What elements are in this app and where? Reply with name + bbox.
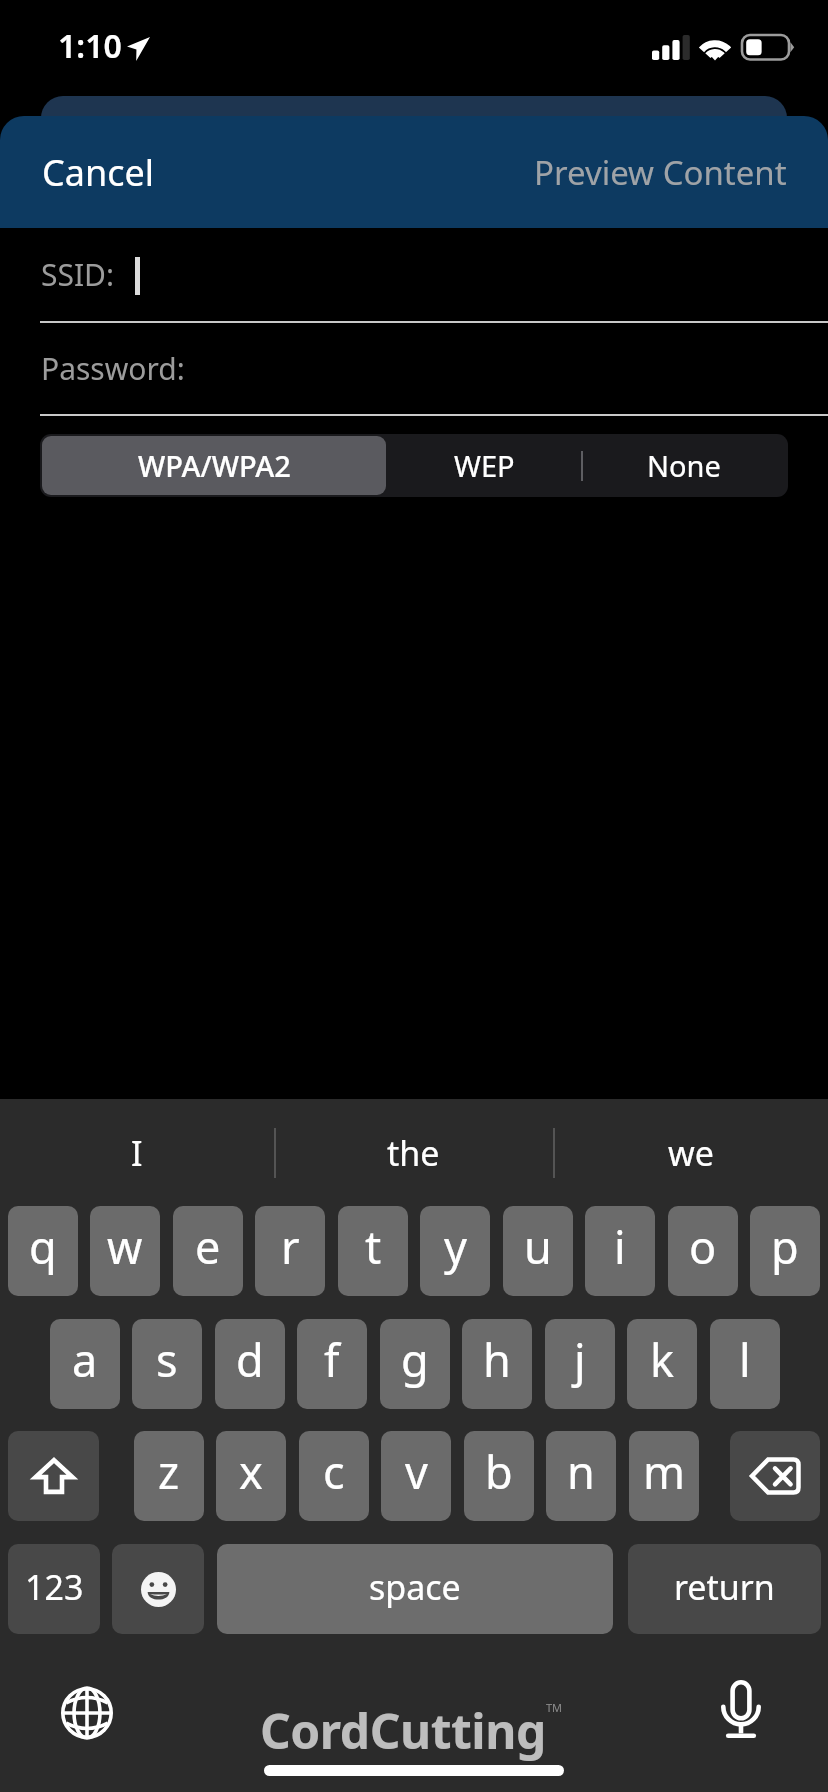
button[interactable]: u <box>503 1206 573 1296</box>
button[interactable]: Preview Content <box>534 150 803 195</box>
staticText: e <box>195 1216 221 1277</box>
button[interactable]: Change keyboard language <box>61 1687 113 1739</box>
button[interactable]: p <box>750 1206 820 1296</box>
staticText: I <box>131 1130 143 1176</box>
staticText: space <box>369 1564 461 1610</box>
staticText: j <box>574 1329 586 1390</box>
button[interactable]: SSID: <box>0 228 828 321</box>
staticText: r <box>281 1216 300 1277</box>
button[interactable]: return <box>628 1544 821 1634</box>
staticText: f <box>324 1329 340 1390</box>
button[interactable]: Password: <box>0 323 828 414</box>
button[interactable]: t <box>338 1206 408 1296</box>
staticText: d <box>236 1329 264 1390</box>
button[interactable]: k <box>627 1319 697 1409</box>
staticText: n <box>567 1441 595 1502</box>
button[interactable]: o <box>668 1206 738 1296</box>
button[interactable]: q <box>8 1206 78 1296</box>
button[interactable]: WPA/WPA2 <box>42 436 386 495</box>
staticText: o <box>689 1216 717 1277</box>
button[interactable]: WEP <box>390 436 578 495</box>
button[interactable]: Dictation <box>721 1680 761 1738</box>
button[interactable]: n <box>546 1431 616 1521</box>
button[interactable]: g <box>380 1319 450 1409</box>
button[interactable]: Cancel <box>26 148 155 197</box>
staticText: WEP <box>454 446 515 485</box>
button[interactable]: e <box>173 1206 243 1296</box>
button[interactable]: 123 <box>8 1544 100 1634</box>
button[interactable]: b <box>464 1431 534 1521</box>
staticText: y <box>444 1216 467 1277</box>
staticText: b <box>485 1441 513 1502</box>
staticText: 1:10 <box>58 24 122 68</box>
staticText: p <box>771 1216 799 1277</box>
button[interactable]: c <box>299 1431 369 1521</box>
staticText: l <box>739 1329 751 1390</box>
button[interactable]: i <box>585 1206 655 1296</box>
staticText: Preview Content <box>534 150 787 195</box>
staticText: h <box>483 1329 511 1390</box>
button[interactable]: Emoji <box>112 1544 204 1634</box>
staticText: s <box>156 1329 178 1390</box>
staticText: t <box>365 1216 382 1277</box>
button[interactable]: j <box>545 1319 615 1409</box>
button[interactable]: Shift <box>8 1431 99 1521</box>
staticText: 123 <box>25 1564 84 1610</box>
staticText: m <box>643 1441 686 1502</box>
button[interactable]: Backspace <box>730 1431 820 1521</box>
button[interactable]: we <box>553 1099 828 1206</box>
staticText: k <box>650 1329 675 1390</box>
staticText: z <box>158 1441 180 1502</box>
button[interactable]: r <box>255 1206 325 1296</box>
staticText: we <box>668 1130 714 1176</box>
staticText: the <box>387 1130 440 1176</box>
staticText: Cancel <box>42 148 155 197</box>
button[interactable]: y <box>420 1206 490 1296</box>
button[interactable]: x <box>216 1431 286 1521</box>
button[interactable]: d <box>215 1319 285 1409</box>
staticText: x <box>239 1441 263 1502</box>
button[interactable]: I <box>0 1099 274 1206</box>
staticText: WPA/WPA2 <box>138 446 291 485</box>
button[interactable]: z <box>134 1431 204 1521</box>
button[interactable]: f <box>297 1319 367 1409</box>
staticText: v <box>405 1441 428 1502</box>
staticText: SSID: <box>41 254 115 295</box>
staticText: c <box>323 1441 345 1502</box>
staticText: q <box>29 1216 57 1277</box>
staticText: CordCutting <box>260 1698 546 1763</box>
staticText: u <box>524 1216 552 1277</box>
button[interactable]: a <box>50 1319 120 1409</box>
staticText: return <box>674 1564 775 1610</box>
staticText: Password: <box>41 348 185 389</box>
button[interactable]: w <box>90 1206 160 1296</box>
staticText: None <box>647 446 721 485</box>
button[interactable]: h <box>462 1319 532 1409</box>
button[interactable]: v <box>381 1431 451 1521</box>
staticText: w <box>107 1216 143 1277</box>
staticText: a <box>72 1329 98 1390</box>
button[interactable]: space <box>217 1544 613 1634</box>
staticText: TM <box>546 1700 563 1715</box>
button[interactable]: l <box>710 1319 780 1409</box>
button[interactable]: m <box>629 1431 699 1521</box>
staticText: i <box>614 1216 626 1277</box>
button[interactable]: None <box>582 436 786 495</box>
staticText: g <box>401 1329 429 1390</box>
button[interactable]: s <box>132 1319 202 1409</box>
button[interactable]: the <box>274 1099 553 1206</box>
